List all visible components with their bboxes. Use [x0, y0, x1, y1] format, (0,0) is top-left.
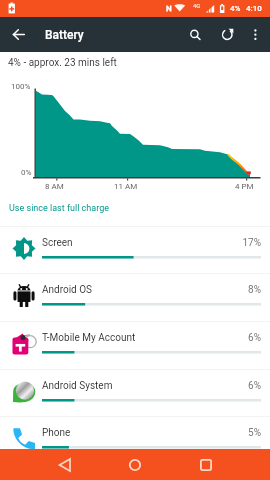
button[interactable]: Refresh	[216, 23, 239, 46]
staticText: 0%	[21, 168, 32, 177]
staticText: Screen	[42, 237, 73, 249]
button[interactable]: Recent apps	[193, 452, 219, 478]
button[interactable]: Back	[52, 452, 78, 478]
button[interactable]: More options	[245, 24, 266, 45]
staticText: Android System	[42, 380, 113, 392]
staticText: 17%	[220, 237, 261, 249]
staticText: 6%	[220, 332, 261, 344]
staticText: 4:10	[246, 4, 262, 13]
staticText: 4% - approx. 23 mins left	[8, 57, 117, 69]
staticText: 5%	[220, 427, 261, 439]
staticText: Phone	[42, 427, 71, 439]
staticText: T-Mobile My Account	[42, 332, 136, 344]
staticText: 8 AM	[45, 182, 64, 191]
button[interactable]: Home	[122, 452, 148, 478]
staticText: 100%	[11, 82, 31, 91]
staticText: 6%	[220, 380, 261, 392]
button[interactable]: Android System	[0, 369, 270, 417]
button[interactable]: Screen	[0, 226, 270, 274]
staticText: 4%	[230, 4, 241, 13]
staticText: Battery	[45, 28, 84, 42]
button[interactable]: Search	[183, 23, 206, 46]
staticText: Android OS	[42, 284, 93, 296]
staticText: 4G	[193, 2, 201, 9]
button[interactable]: Android OS	[0, 273, 270, 321]
staticText: 11 AM	[114, 182, 138, 191]
button[interactable]: Use since last full charge	[9, 203, 109, 214]
staticText: 8%	[220, 284, 261, 296]
staticText: N	[166, 4, 172, 13]
button[interactable]: Phone	[0, 416, 270, 464]
button[interactable]: T-Mobile My Account	[0, 321, 270, 369]
staticText: 4 PM	[235, 182, 254, 191]
button[interactable]: Navigate up	[5, 21, 32, 48]
